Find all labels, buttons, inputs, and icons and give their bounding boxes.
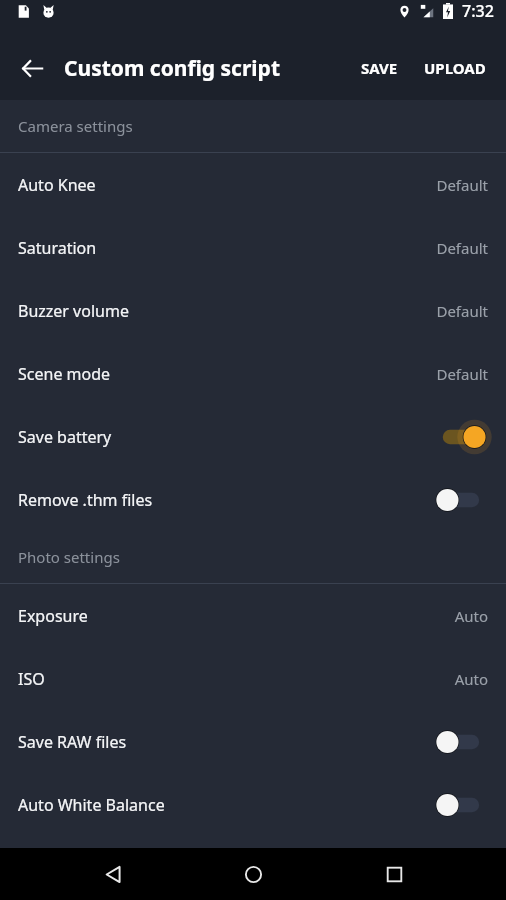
staticText: Save battery <box>18 426 112 448</box>
staticText: 7:32 <box>462 0 494 22</box>
staticText: Exposure <box>18 605 88 627</box>
button[interactable]: Home <box>225 848 281 900</box>
button[interactable]: Auto Knee <box>0 153 506 216</box>
staticText: UPLOAD <box>424 58 486 78</box>
button[interactable]: Recent apps <box>366 848 422 900</box>
button[interactable]: Exposure <box>0 584 506 647</box>
staticText: Auto White Balance <box>18 794 165 816</box>
button[interactable]: Back <box>8 44 56 92</box>
staticText: Default <box>436 301 488 321</box>
button[interactable]: Auto White Balance <box>0 773 506 836</box>
button[interactable]: SAVE <box>351 48 408 88</box>
staticText: Default <box>436 364 488 384</box>
staticText: Auto <box>454 669 488 689</box>
button[interactable]: Save RAW files <box>0 710 506 773</box>
button[interactable]: Scene mode <box>0 342 506 405</box>
staticText: Save RAW files <box>18 731 127 753</box>
button[interactable]: ISO <box>0 647 506 710</box>
button[interactable]: UPLOAD <box>414 48 496 88</box>
button[interactable]: Remove .thm files <box>0 468 506 531</box>
staticText: Photo settings <box>18 547 120 567</box>
staticText: Default <box>436 175 488 195</box>
staticText: Custom config script <box>64 54 281 83</box>
button[interactable]: Saturation <box>0 216 506 279</box>
staticText: ISO <box>18 668 45 690</box>
button[interactable]: Save battery <box>0 405 506 468</box>
button[interactable]: Buzzer volume <box>0 279 506 342</box>
staticText: Scene mode <box>18 363 111 385</box>
staticText: Camera settings <box>18 116 133 136</box>
staticText: Remove .thm files <box>18 489 153 511</box>
staticText: Auto <box>454 606 488 626</box>
staticText: SAVE <box>361 58 398 78</box>
staticText: Buzzer volume <box>18 300 129 322</box>
button[interactable]: Back <box>85 848 141 900</box>
staticText: Saturation <box>18 237 97 259</box>
staticText: Auto Knee <box>18 174 96 196</box>
staticText: Default <box>436 238 488 258</box>
